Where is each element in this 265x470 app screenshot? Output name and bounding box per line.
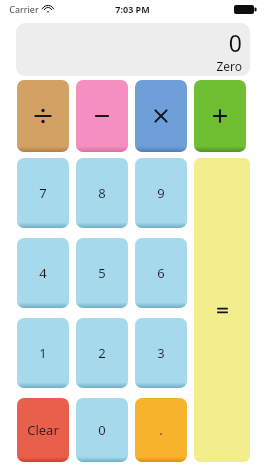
button[interactable]: 7 bbox=[17, 158, 69, 228]
button[interactable]: Divide bbox=[17, 80, 69, 152]
staticText: 7 bbox=[39, 184, 47, 202]
button[interactable]: 3 bbox=[135, 318, 187, 388]
button[interactable]: Minus bbox=[76, 80, 128, 152]
staticText: Clear bbox=[27, 421, 59, 439]
staticText: 0 bbox=[228, 27, 242, 58]
button[interactable]: Plus bbox=[194, 80, 246, 152]
staticText: 4 bbox=[39, 264, 47, 282]
button[interactable]: . bbox=[135, 398, 187, 462]
button[interactable]: 0 bbox=[76, 398, 128, 462]
staticText: 6 bbox=[157, 264, 165, 282]
button[interactable]: 5 bbox=[76, 238, 128, 308]
button[interactable]: 2 bbox=[76, 318, 128, 388]
staticText: . bbox=[159, 421, 163, 439]
staticText: 1 bbox=[39, 344, 47, 362]
staticText: 5 bbox=[98, 264, 106, 282]
staticText: 3 bbox=[157, 344, 165, 362]
button[interactable]: 6 bbox=[135, 238, 187, 308]
button[interactable]: 0 bbox=[16, 23, 250, 76]
button[interactable]: 9 bbox=[135, 158, 187, 228]
staticText: 0 bbox=[98, 421, 106, 439]
staticText: 9 bbox=[157, 184, 165, 202]
staticText: 8 bbox=[98, 184, 106, 202]
button[interactable]: Clear bbox=[17, 398, 69, 462]
staticText: 2 bbox=[98, 344, 106, 362]
button[interactable]: 8 bbox=[76, 158, 128, 228]
button[interactable]: Multiply bbox=[135, 80, 187, 152]
staticText: Carrier bbox=[9, 3, 39, 15]
button[interactable]: 4 bbox=[17, 238, 69, 308]
staticText: 7:03 PM bbox=[115, 3, 150, 15]
staticText: Zero bbox=[216, 58, 242, 74]
button[interactable]: Equals bbox=[194, 158, 250, 462]
button[interactable]: 1 bbox=[17, 318, 69, 388]
